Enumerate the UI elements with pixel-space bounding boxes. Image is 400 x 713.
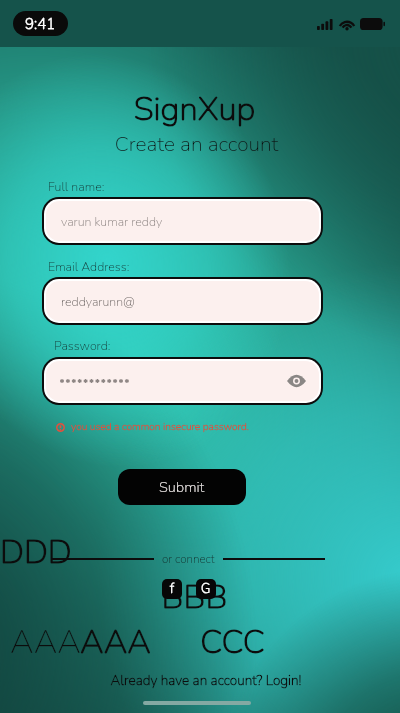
button[interactable]: varun kumar reddy bbox=[46, 201, 319, 241]
staticText: varun kumar reddy bbox=[61, 213, 163, 230]
button[interactable]: Sign up with Google bbox=[196, 579, 216, 599]
staticText: DDD bbox=[0, 530, 400, 575]
staticText: BBB bbox=[0, 575, 389, 620]
staticText: you used a common insecure password. bbox=[71, 420, 249, 434]
staticText: Full name: bbox=[48, 178, 105, 195]
staticText: Password: bbox=[54, 337, 111, 354]
button[interactable]: Already have an account? Login! bbox=[0, 671, 400, 690]
button[interactable]: Submit bbox=[118, 469, 246, 505]
staticText: CCC bbox=[200, 620, 265, 665]
button[interactable]: Sign up with Facebook bbox=[162, 579, 182, 599]
staticText: reddyarunn@ bbox=[61, 293, 135, 310]
other: Show password bbox=[287, 375, 306, 387]
staticText: Submit bbox=[159, 477, 205, 497]
button[interactable]: reddyarunn@ bbox=[46, 281, 319, 321]
staticText: G bbox=[201, 580, 211, 598]
staticText: or connect bbox=[162, 551, 215, 567]
staticText: 9:41 bbox=[25, 14, 56, 34]
staticText: f bbox=[170, 580, 174, 598]
staticText: Email Address: bbox=[48, 258, 130, 275]
staticText: Create an account bbox=[0, 130, 393, 159]
staticText: AAA bbox=[10, 620, 81, 665]
staticText: SignXup bbox=[0, 87, 389, 132]
button[interactable]: Show password bbox=[46, 361, 319, 401]
staticText: AAA bbox=[80, 620, 151, 665]
